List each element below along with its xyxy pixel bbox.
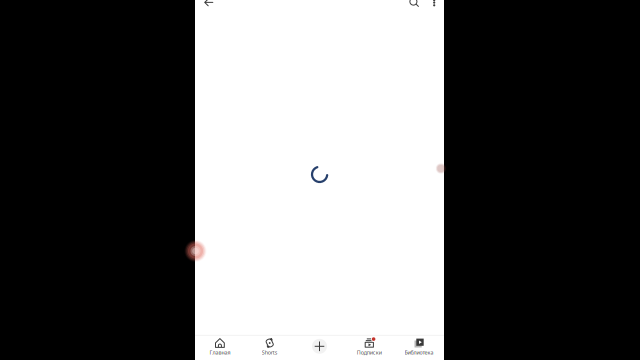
button[interactable]: More options (425, 0, 443, 9)
staticText: Библиотека (405, 349, 434, 356)
button[interactable]: Подписки (344, 335, 394, 360)
button[interactable]: Главная (195, 335, 245, 360)
button[interactable]: Shorts (245, 335, 295, 360)
button[interactable]: Библиотека (394, 335, 444, 360)
staticText: Shorts (262, 349, 278, 356)
button[interactable]: Back (197, 0, 221, 11)
staticText: Подписки (357, 349, 382, 356)
staticText: Главная (209, 349, 230, 356)
button[interactable]: Search (403, 0, 425, 11)
button[interactable]: Create (295, 335, 344, 360)
